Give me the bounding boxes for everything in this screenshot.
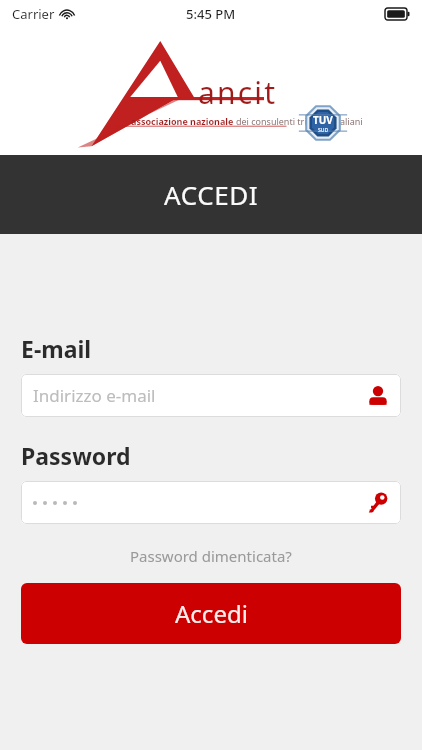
staticText: ACCEDI [164, 177, 259, 212]
button[interactable]: Password dimenticata? [21, 546, 401, 566]
staticText: Password dimenticata? [130, 546, 292, 566]
staticText: TUV [313, 113, 333, 127]
staticText: associazione nazionale [131, 115, 236, 127]
staticText: Accedi [175, 597, 248, 630]
staticText: Carrier [12, 5, 55, 23]
staticText: Indirizzo e-mail [33, 384, 156, 407]
button[interactable]: Accedi [21, 583, 401, 644]
staticText: E-mail [21, 333, 92, 364]
other: Utente [367, 385, 389, 407]
staticText: SUD [318, 127, 329, 134]
staticText: Password [21, 440, 131, 471]
other: Password [366, 491, 389, 514]
staticText: 5:45 PM [186, 5, 236, 23]
staticText: ancit [198, 72, 278, 113]
button[interactable]: Indirizzo e-mail [21, 374, 401, 417]
staticText: dei consulenti tributari italiani [236, 115, 363, 127]
button[interactable]: Password [21, 481, 401, 524]
